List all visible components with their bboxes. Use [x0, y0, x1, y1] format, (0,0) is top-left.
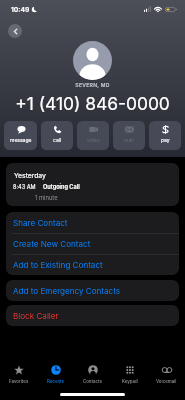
button[interactable]: Back: [8, 24, 22, 38]
button[interactable]: Create New Contact: [6, 234, 179, 254]
staticText: 1 minute: [35, 194, 58, 201]
button[interactable]: call: [41, 121, 73, 150]
staticText: Yesterday: [14, 171, 46, 179]
staticText: message: [10, 137, 32, 143]
staticText: Recents: [47, 379, 64, 384]
staticText: Outgoing Call: [43, 184, 80, 191]
button[interactable]: Add to Emergency Contacts: [6, 280, 179, 301]
staticText: Create New Contact: [13, 239, 91, 249]
button[interactable]: Favorites: [0, 357, 37, 384]
staticText: Add to Existing Contact: [13, 260, 103, 270]
button[interactable]: Recents: [37, 357, 74, 384]
button[interactable]: video: [77, 121, 109, 150]
staticText: Share Contact: [13, 218, 68, 228]
staticText: Contacts: [83, 379, 102, 384]
button[interactable]: Yesterday: [6, 163, 179, 206]
button[interactable]: Share Contact: [6, 212, 179, 233]
staticText: +1 (410) 846-0000: [0, 93, 185, 114]
button[interactable]: Voicemail: [148, 357, 185, 384]
staticText: video: [87, 137, 100, 143]
button[interactable]: Keypad: [111, 357, 148, 384]
button[interactable]: Contacts: [74, 357, 111, 384]
staticText: mail: [124, 137, 134, 143]
staticText: Keypad: [122, 379, 138, 384]
staticText: SEVERN, MD: [0, 82, 185, 88]
button[interactable]: message: [4, 121, 37, 150]
staticText: Block Caller: [13, 311, 59, 321]
button[interactable]: pay: [149, 121, 181, 150]
button[interactable]: Block Caller: [6, 305, 179, 326]
staticText: 8:43 AM: [13, 184, 36, 191]
button[interactable]: Add to Existing Contact: [6, 255, 179, 275]
staticText: 10:49: [11, 5, 30, 13]
staticText: pay: [161, 137, 170, 143]
staticText: call: [53, 137, 62, 143]
staticText: Voicemail: [156, 379, 177, 384]
button[interactable]: mail: [113, 121, 145, 150]
staticText: Add to Emergency Contacts: [13, 286, 121, 296]
staticText: Favorites: [9, 379, 29, 384]
